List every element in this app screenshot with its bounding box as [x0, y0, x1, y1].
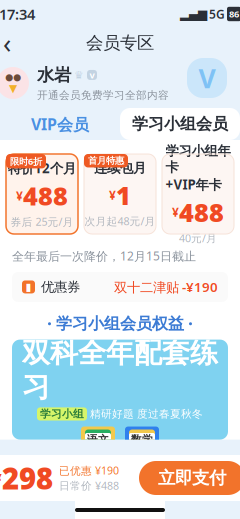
staticText: 首月特惠: [88, 155, 124, 166]
staticText: 1: [116, 178, 131, 212]
staticText: 语文: [87, 433, 109, 446]
staticText: 17:34: [0, 4, 35, 24]
staticText: 488: [23, 179, 68, 212]
staticText: ▮: [25, 281, 31, 293]
staticText: 特价12个月: [8, 159, 76, 177]
staticText: 精研好题 度过春夏秋冬: [87, 407, 203, 420]
staticText: 学习小组会员权益: [56, 314, 184, 334]
staticText: ‹: [3, 25, 11, 61]
staticText: VIP会员: [31, 113, 89, 135]
staticText: 5G: [209, 6, 225, 22]
staticText: 次月起48元/月: [84, 214, 155, 228]
staticText: ¥: [109, 187, 116, 203]
staticText: ¥: [16, 188, 23, 204]
staticText: 双十二津贴 -¥190: [114, 278, 218, 296]
staticText: 日常价 ¥488: [59, 478, 119, 493]
staticText: 学习小组年卡 +VIP年卡: [165, 143, 230, 193]
staticText: 会员专区: [86, 32, 154, 54]
staticText: 开通会员免费学习全部内容: [37, 89, 169, 102]
staticText: 全年最后一次降价，12月15日截止: [12, 248, 196, 264]
button[interactable]: VIP会员: [0, 108, 120, 140]
staticText: v: [89, 69, 94, 81]
staticText: 已优惠 ¥190: [59, 463, 119, 477]
staticText: V: [198, 60, 215, 96]
staticText: ▼: [9, 82, 17, 94]
staticText: 488: [179, 195, 224, 229]
button[interactable]: 立即支付: [139, 461, 240, 495]
staticText: 水岩: [37, 64, 71, 86]
button[interactable]: Back: [0, 29, 21, 57]
staticText: 限时6折: [10, 155, 42, 167]
staticText: 双科全年配套练习: [22, 336, 218, 404]
staticText: ¥: [0, 470, 2, 486]
button[interactable]: 学习小组会员: [120, 108, 240, 140]
staticText: 86: [229, 8, 239, 20]
staticText: ▂▄▆: [180, 7, 207, 21]
staticText: 学习小组: [40, 407, 84, 420]
staticText: ¥: [172, 204, 179, 220]
button[interactable]: ▮: [12, 272, 228, 302]
staticText: ♛: [74, 69, 84, 81]
button[interactable]: 学习小组年卡 +VIP年卡: [162, 152, 234, 236]
staticText: 立即支付: [158, 467, 226, 489]
staticText: 数学: [131, 433, 153, 446]
staticText: 优惠券: [41, 279, 80, 295]
button[interactable]: 连续包月: [84, 152, 156, 236]
staticText: 券后 25元/月: [10, 215, 73, 229]
staticText: 学习小组会员: [132, 114, 228, 134]
staticText: ●●: [5, 72, 21, 82]
staticText: 298: [2, 458, 53, 497]
staticText: 连续包月: [94, 160, 146, 176]
button[interactable]: 特价12个月: [6, 152, 78, 236]
staticText: 40元/月: [179, 231, 217, 245]
